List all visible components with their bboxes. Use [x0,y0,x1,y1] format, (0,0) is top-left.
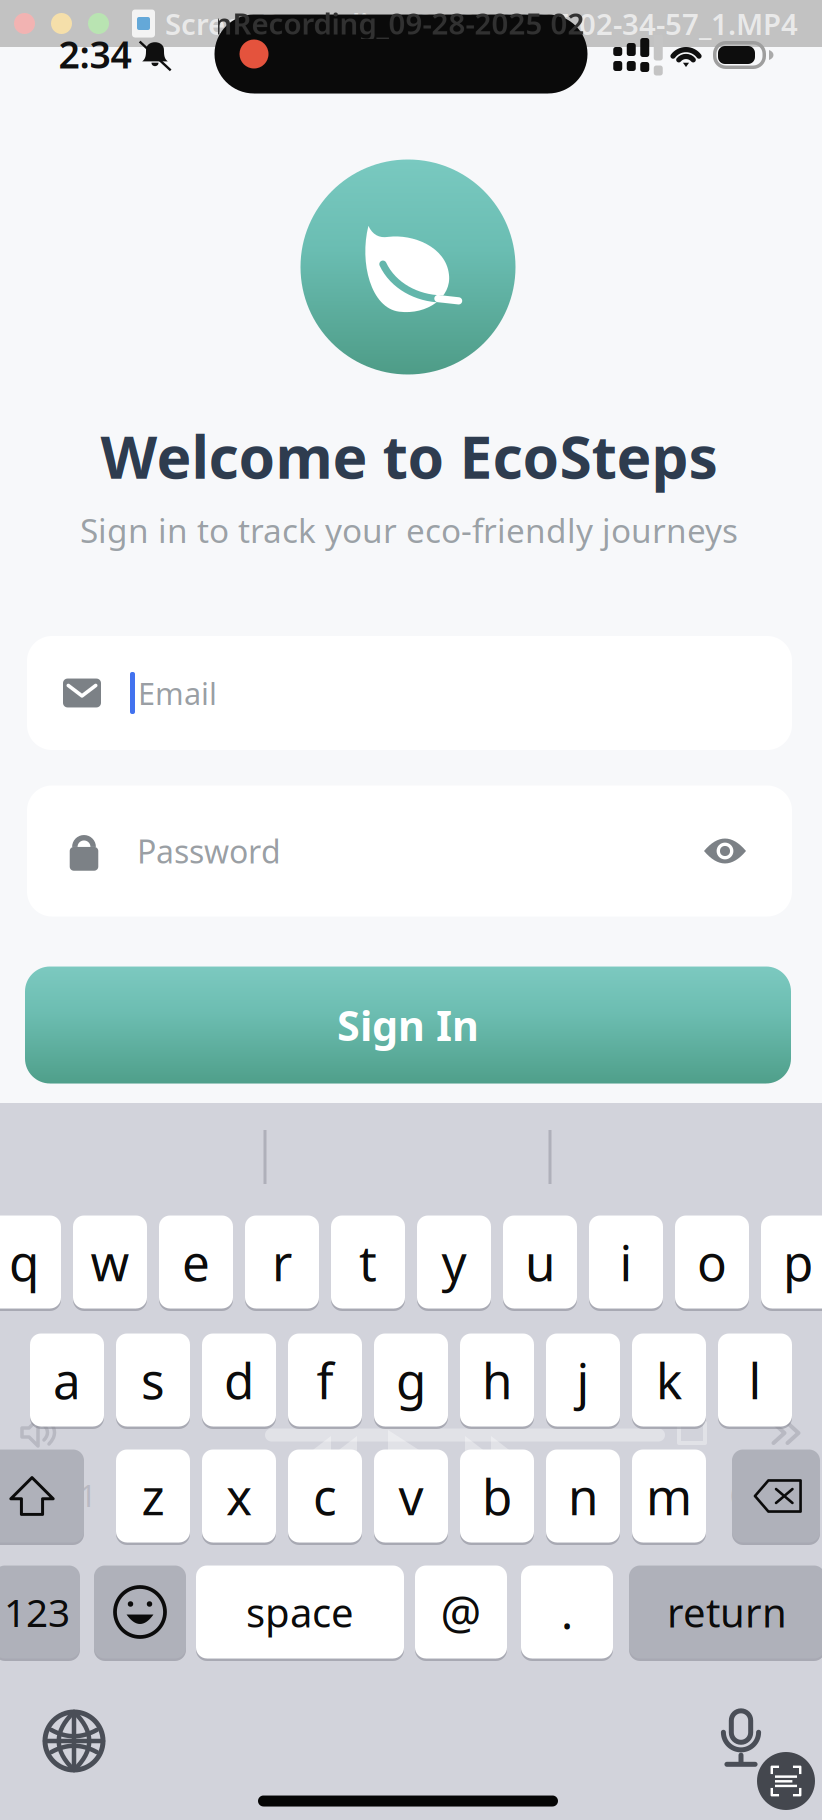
staticText: l [748,1347,761,1413]
button[interactable]: z [116,1449,190,1542]
button[interactable]: Password [27,785,792,916]
staticText: x [226,1463,252,1529]
staticText: e [182,1229,210,1295]
button[interactable]: s [116,1333,190,1426]
staticText: z [141,1463,164,1529]
button[interactable]: n [546,1449,620,1542]
button[interactable]: c [288,1449,362,1542]
button[interactable]: . [521,1565,613,1658]
button[interactable]: p [761,1215,822,1308]
button[interactable]: return [629,1565,822,1658]
staticText: o [697,1229,727,1295]
staticText: ScreenRecording_09-28-2025 02-34-57_1.MP… [165,4,798,43]
button[interactable]: Next keyboard [45,1712,103,1770]
staticText: Password [137,830,281,872]
button[interactable]: i [589,1215,663,1308]
staticText: q [9,1229,39,1295]
staticText: v [398,1463,423,1529]
button[interactable] [0,1449,84,1542]
button[interactable]: 123 [0,1565,80,1658]
button[interactable]: b [460,1449,534,1542]
button[interactable]: l [718,1333,792,1426]
button[interactable]: u [503,1215,577,1308]
staticText: u [525,1229,555,1295]
button[interactable]: Sign In [25,966,791,1083]
button[interactable]: Scan text [757,1752,815,1810]
button[interactable]: t [331,1215,405,1308]
button[interactable]: x [202,1449,276,1542]
staticText: n [568,1463,598,1529]
staticText: h [482,1347,512,1413]
button[interactable] [732,1449,820,1542]
button[interactable]: h [460,1333,534,1426]
staticText: Welcome to EcoSteps [100,417,717,495]
staticText: Sign in to track your eco-friendly journ… [80,508,738,552]
button[interactable]: o [675,1215,749,1308]
staticText: p [783,1229,813,1295]
button[interactable]: e [159,1215,233,1308]
button[interactable]: f [288,1333,362,1426]
staticText: 123 [4,1586,70,1638]
button[interactable] [94,1565,186,1658]
staticText: space [246,1585,354,1638]
button[interactable]: a [30,1333,104,1426]
button[interactable]: q [0,1215,61,1308]
staticText: g [396,1347,426,1413]
staticText: s [141,1347,165,1413]
button[interactable]: r [245,1215,319,1308]
button[interactable]: space [196,1565,404,1658]
staticText: Sign In [337,998,479,1052]
staticText: k [656,1347,682,1413]
button[interactable]: @ [415,1565,507,1658]
button[interactable]: y [417,1215,491,1308]
staticText: . [561,1582,573,1642]
button[interactable]: d [202,1333,276,1426]
staticText: 00:01 [17,1475,97,1515]
button[interactable]: v [374,1449,448,1542]
staticText: d [224,1347,254,1413]
staticText: ScreenRecording_09-28-2025 02-34-57_1.MP… [136,3,769,42]
staticText: b [482,1463,512,1529]
staticText: y [441,1229,466,1295]
staticText: return [667,1585,787,1638]
staticText: a [53,1347,81,1413]
button[interactable]: Dictate [719,1709,763,1767]
staticText: c [313,1463,337,1529]
staticText: m [646,1463,692,1529]
button[interactable]: k [632,1333,706,1426]
staticText: Email [138,673,217,713]
staticText: 2:34 [58,29,131,79]
button[interactable]: g [374,1333,448,1426]
button[interactable]: Email [27,636,792,750]
staticText: @ [440,1582,481,1642]
staticText: 02:48 [730,1475,810,1515]
staticText: w [90,1229,129,1295]
button[interactable]: m [632,1449,706,1542]
button[interactable]: j [546,1333,620,1426]
button[interactable]: w [73,1215,147,1308]
staticText: i [619,1229,632,1295]
staticText: f [316,1347,333,1413]
staticText: t [359,1229,377,1295]
staticText: j [576,1347,589,1413]
staticText: r [272,1229,292,1295]
